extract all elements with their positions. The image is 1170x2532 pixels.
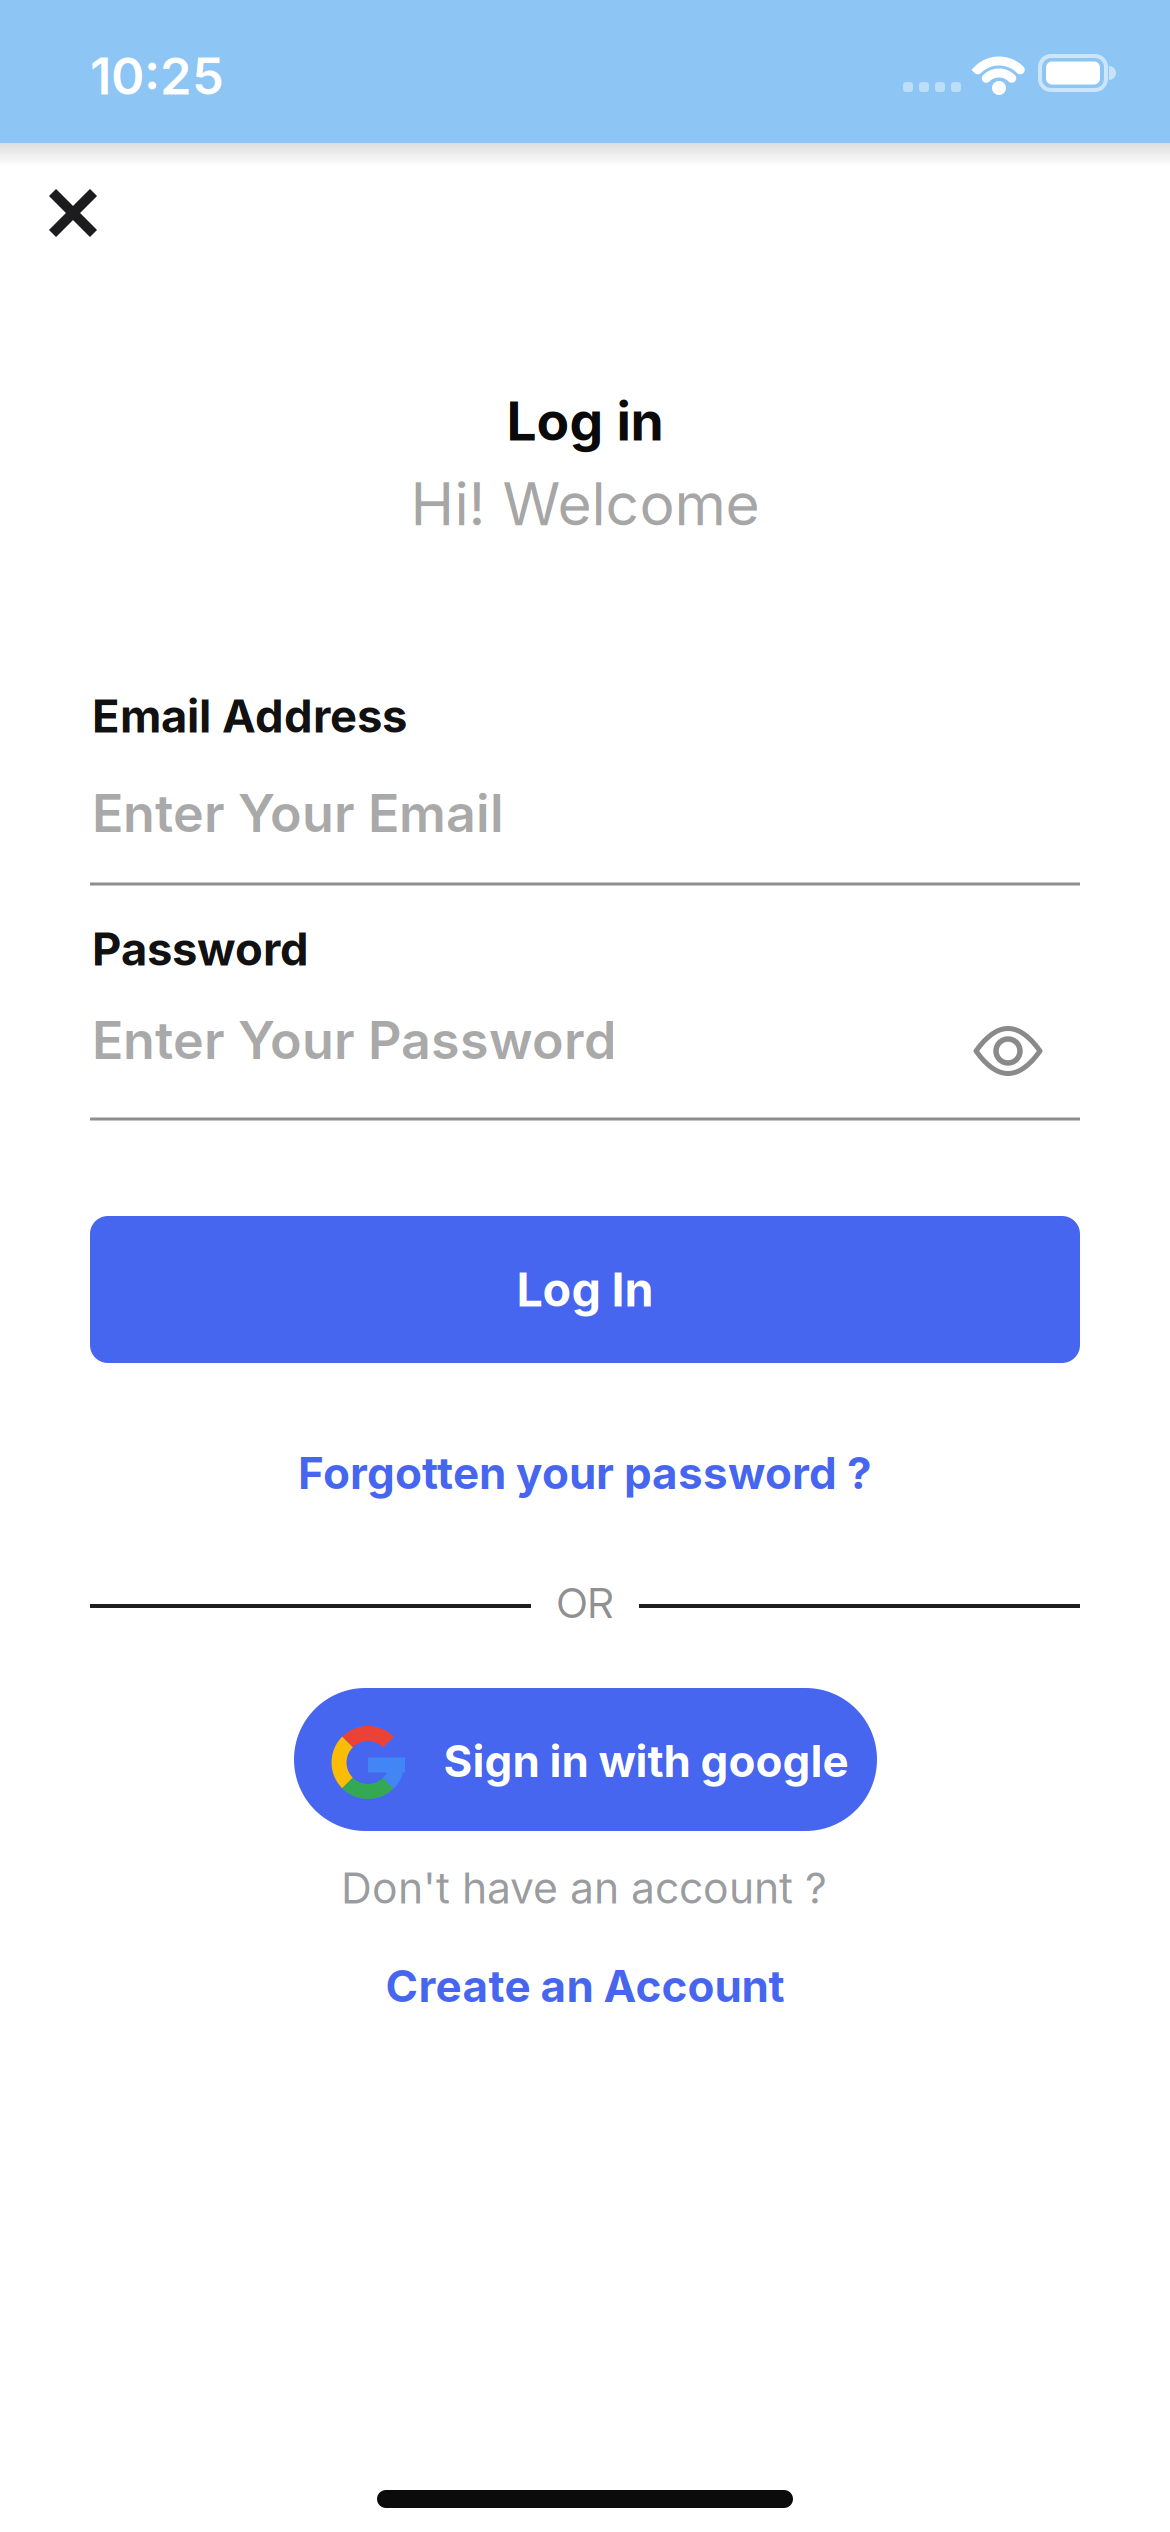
staticText: Log In: [516, 1262, 653, 1317]
staticText: Create an Account: [385, 1960, 784, 2012]
staticText: Enter Your Password: [92, 1009, 616, 1071]
staticText: Password: [92, 922, 309, 976]
staticText: Log in: [506, 389, 663, 452]
button[interactable]: Sign in with google: [294, 1688, 877, 1831]
staticText: Don't have an account ?: [341, 1863, 827, 1913]
staticText: Sign in with google: [443, 1735, 848, 1787]
staticText: Enter Your Email: [92, 782, 504, 844]
staticText: Hi! Welcome: [410, 469, 759, 539]
button[interactable]: Create an Account: [385, 1960, 784, 2012]
staticText: 10:25: [90, 46, 224, 106]
button[interactable]: Forgotten your password ?: [298, 1447, 872, 1499]
staticText: Forgotten your password ?: [298, 1447, 872, 1499]
button[interactable]: Log In: [90, 1216, 1080, 1363]
staticText: OR: [556, 1579, 613, 1627]
staticText: Email Address: [92, 689, 407, 743]
button[interactable]: Show password: [958, 1006, 1058, 1096]
button[interactable]: Close: [28, 168, 118, 258]
